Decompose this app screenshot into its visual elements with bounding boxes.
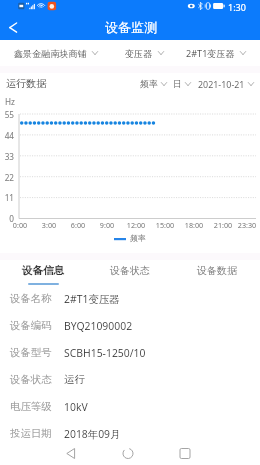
button[interactable]: Recent apps <box>171 444 199 465</box>
staticText: 运行 <box>64 373 85 386</box>
button[interactable]: Back <box>0 14 26 40</box>
staticText: 11 <box>0 192 14 203</box>
staticText: 22 <box>0 172 14 183</box>
button[interactable]: 设备状态 <box>0 366 260 393</box>
button[interactable]: 变压器 <box>113 40 178 66</box>
staticText: 电压等级 <box>10 400 52 413</box>
staticText: 2018年09月 <box>64 427 121 441</box>
staticText: 设备状态 <box>110 264 150 277</box>
button[interactable]: 投运日期 <box>0 420 260 447</box>
staticText: 投运日期 <box>10 427 52 440</box>
staticText: 55 <box>0 109 14 120</box>
staticText: SCBH15-1250/10 <box>64 346 146 360</box>
button[interactable]: Back <box>57 444 85 465</box>
staticText: 44 <box>0 130 14 141</box>
button[interactable]: 设备型号 <box>0 339 260 366</box>
button[interactable]: 频率 <box>140 73 169 94</box>
button[interactable]: 鑫景金融南块商铺 <box>2 40 111 66</box>
staticText: 日 <box>173 78 182 89</box>
button[interactable]: 日 <box>173 73 193 94</box>
staticText: 频率 <box>130 233 146 243</box>
staticText: 1:30 <box>228 1 246 13</box>
button[interactable]: 2#T1变压器 <box>174 40 260 66</box>
staticText: 鑫景金融南块商铺 <box>14 48 87 59</box>
staticText: 9:00 <box>92 220 122 230</box>
staticText: 3:00 <box>34 220 64 230</box>
button[interactable]: 设备信息 <box>0 260 86 287</box>
staticText: 设备监测 <box>105 19 158 36</box>
staticText: 运行数据 <box>6 77 47 90</box>
staticText: 变压器 <box>125 48 153 59</box>
staticText: 设备信息 <box>22 264 64 277</box>
staticText: 设备状态 <box>10 373 52 386</box>
staticText: BYQ21090002 <box>64 319 133 333</box>
staticText: 18:00 <box>179 220 209 230</box>
staticText: 设备型号 <box>10 346 52 359</box>
staticText: 21:00 <box>208 220 238 230</box>
staticText: 33 <box>0 151 14 162</box>
staticText: 2#T1变压器 <box>64 292 120 306</box>
button[interactable]: 设备编码 <box>0 312 260 339</box>
staticText: 10kV <box>64 400 88 414</box>
button[interactable]: 电压等级 <box>0 393 260 420</box>
staticText: 2#T1变压器 <box>186 47 235 59</box>
staticText: 0:00 <box>5 220 35 230</box>
button[interactable]: 设备数据 <box>173 260 260 287</box>
staticText: 设备编码 <box>10 319 52 332</box>
staticText: 0 <box>0 213 14 224</box>
staticText: Hz <box>5 96 15 107</box>
staticText: 6:00 <box>63 220 93 230</box>
staticText: 15:00 <box>150 220 180 230</box>
staticText: 2021-10-21 <box>198 78 245 90</box>
button[interactable]: Home <box>114 444 142 465</box>
staticText: 设备数据 <box>197 264 237 277</box>
staticText: 23:30 <box>232 220 260 230</box>
staticText: 频率 <box>140 78 158 89</box>
staticText: 12:00 <box>121 220 151 230</box>
staticText: 设备名称 <box>10 292 52 305</box>
button[interactable]: 2021-10-21 <box>198 73 256 94</box>
button[interactable]: 设备状态 <box>86 260 173 287</box>
button[interactable]: 设备名称 <box>0 285 260 312</box>
